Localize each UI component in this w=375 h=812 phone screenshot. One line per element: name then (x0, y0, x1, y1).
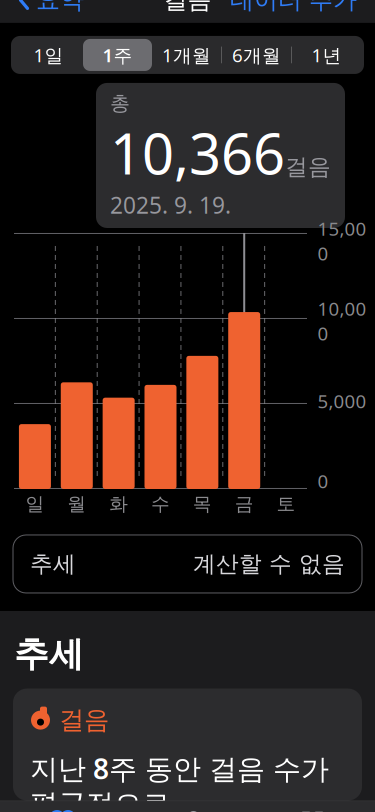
staticText: 1주 (102, 42, 132, 67)
staticText: 금 (235, 492, 254, 515)
button[interactable]: 1년 (292, 39, 361, 71)
staticText: 1일 (33, 42, 63, 67)
staticText: 추세 (14, 633, 84, 676)
button[interactable]: 6개월 (222, 39, 291, 71)
staticText: 1년 (311, 42, 341, 67)
button[interactable]: 둘러보기 (250, 809, 375, 812)
staticText: 추세 (30, 550, 76, 578)
staticText: 5,000 (317, 389, 366, 413)
staticText: 6개월 (232, 42, 281, 67)
button[interactable]: 요약 (0, 809, 125, 812)
staticText: 데이터 추가 (230, 0, 357, 15)
button[interactable]: 1주 (83, 39, 152, 71)
staticText: 총 (110, 91, 130, 115)
button[interactable]: 1개월 (152, 39, 221, 71)
button[interactable]: 추세 (13, 535, 362, 593)
staticText: 토 (277, 492, 296, 515)
staticText: 10,000 (317, 296, 366, 346)
staticText: 목 (193, 492, 212, 515)
staticText: 1개월 (162, 42, 211, 67)
staticText: 월 (67, 492, 86, 515)
staticText: 15,000 (317, 216, 366, 266)
button[interactable]: 요약 (8, 0, 94, 23)
staticText: 지난 8주 동안 걸음 수가 평균적으로 (30, 750, 329, 812)
button[interactable]: 데이터 추가 (220, 0, 367, 23)
button[interactable]: 공유 (125, 809, 250, 812)
staticText: 화 (109, 492, 128, 515)
staticText: 일 (25, 492, 44, 515)
staticText: 걸음 (285, 153, 331, 181)
button[interactable]: 1일 (14, 39, 83, 71)
staticText: 요약 (36, 0, 84, 15)
staticText: 계산할 수 없음 (193, 550, 345, 578)
staticText: 수 (151, 492, 170, 515)
staticText: 걸음 (163, 0, 211, 15)
staticText: 10,366 (110, 115, 285, 190)
staticText: 0 (317, 469, 328, 493)
staticText: 2025. 9. 19. (110, 190, 231, 220)
staticText: 걸음 (59, 705, 109, 736)
